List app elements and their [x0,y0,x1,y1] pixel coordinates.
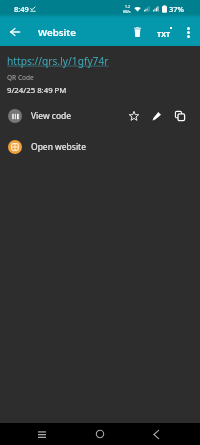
button[interactable]: Delete [126,21,148,43]
staticText: Open website [31,141,86,153]
staticText: 9/24/25 8:49 PM [7,85,67,96]
button[interactable]: Back [4,21,26,43]
staticText: TXT [157,29,171,39]
staticText: 8:49 [14,4,29,14]
button[interactable]: Edit [148,107,166,125]
staticText: 37% [169,4,184,14]
staticText: 1.2 [125,4,130,9]
button[interactable]: Text mode [152,22,176,46]
staticText: View code [31,110,72,122]
staticText: https://qrs.ly/1gfy74r [7,54,109,68]
button[interactable]: More options [178,22,198,42]
button[interactable]: Copy [171,107,189,125]
button[interactable]: Home [91,425,109,443]
staticText: Website [38,26,76,39]
button[interactable]: Open website [0,136,200,158]
staticText: QR Code [7,73,34,82]
staticText: KB/s [123,9,131,14]
button[interactable]: Recent apps [33,425,51,443]
button[interactable]: Favorite [125,107,143,125]
button[interactable]: Back [147,425,165,443]
